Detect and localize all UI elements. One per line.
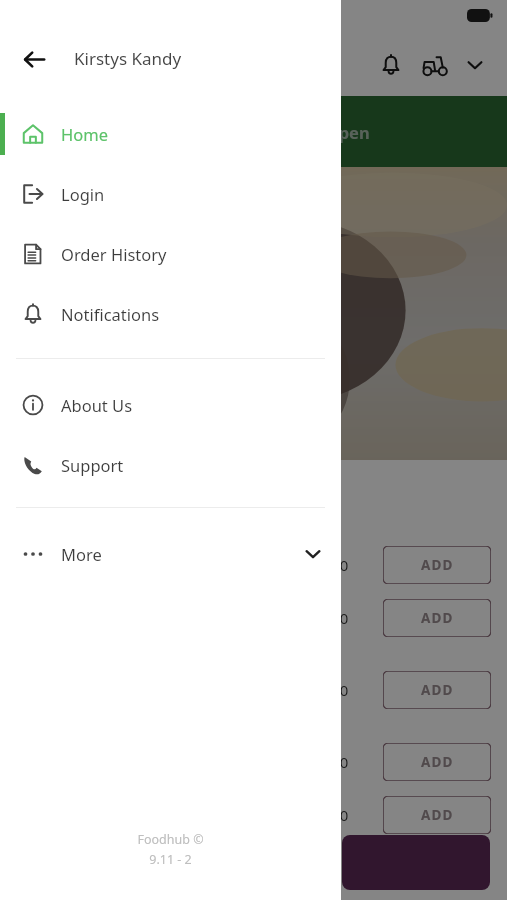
staticText: Store is closed and will open	[138, 121, 370, 143]
staticText: Foodhub ©	[137, 831, 204, 848]
staticText: ADD	[421, 753, 454, 771]
button[interactable]: Expand	[457, 47, 493, 83]
staticText: ADD	[421, 556, 454, 574]
staticText: ADD	[421, 609, 454, 627]
staticText: ADD	[421, 806, 454, 824]
button[interactable]: More	[0, 524, 341, 584]
button[interactable]: Notifications	[0, 284, 341, 344]
staticText: About Us	[61, 394, 133, 416]
staticText: Kirstys Kandy	[74, 47, 182, 70]
button[interactable]: Back	[12, 37, 56, 81]
button[interactable]: Order History	[0, 224, 341, 284]
button[interactable]: Support	[0, 435, 341, 495]
staticText: Support	[61, 454, 124, 476]
staticText: Order History	[61, 243, 167, 265]
button[interactable]: About Us	[0, 375, 341, 435]
button[interactable]: Notifications	[371, 45, 411, 85]
staticText: 9.11 - 2	[149, 851, 192, 868]
staticText: £5.50	[310, 680, 349, 700]
staticText: Login	[61, 183, 105, 205]
staticText: £5.50	[310, 555, 349, 575]
staticText: Home	[61, 123, 108, 145]
staticText: Notifications	[61, 303, 160, 325]
staticText: £5.50	[310, 805, 349, 825]
button[interactable]: Delivery	[415, 45, 455, 85]
button[interactable]: Login	[0, 164, 341, 224]
staticText: £5.50	[310, 752, 349, 772]
staticText: More	[61, 543, 102, 565]
staticText: ADD	[421, 681, 454, 699]
staticText: £5.50	[310, 608, 349, 628]
button[interactable]: Home	[0, 104, 341, 164]
